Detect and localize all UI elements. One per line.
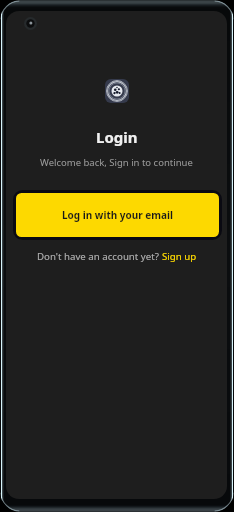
staticText: Don't have an account yet? xyxy=(37,250,162,263)
staticText: Welcome back, Sign in to continue xyxy=(40,156,193,169)
button[interactable]: Log in with your email xyxy=(16,193,219,237)
other: App logo xyxy=(105,79,129,103)
staticText: Login xyxy=(96,127,138,147)
staticText: Log in with your email xyxy=(62,208,174,222)
staticText: Sign up xyxy=(162,250,197,263)
button[interactable]: Sign up xyxy=(162,250,197,263)
